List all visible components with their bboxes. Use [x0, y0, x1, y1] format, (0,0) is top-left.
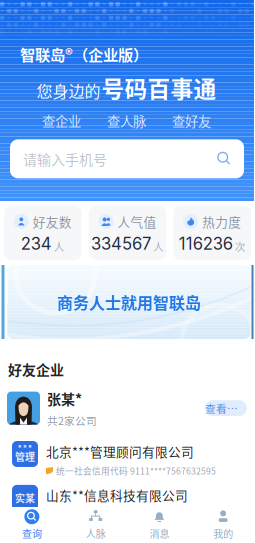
button[interactable]: 查询: [0, 507, 64, 543]
staticText: 统一社会信用代码 9111****7567632595: [56, 464, 216, 477]
staticText: 116236: [179, 234, 233, 254]
staticText: 智联岛®（企业版）: [20, 43, 148, 65]
button[interactable]: 好友数: [4, 206, 82, 260]
staticText: 次: [235, 238, 246, 254]
button[interactable]: 热力度: [173, 206, 251, 260]
staticText: 好友企业: [8, 359, 64, 379]
button[interactable]: 请输入手机号: [10, 139, 244, 178]
button[interactable]: 查人脉: [107, 111, 146, 130]
staticText: 山东**信息科技有限公司: [46, 486, 188, 504]
staticText: 好友数: [33, 212, 72, 230]
staticText: 查好友: [172, 111, 211, 130]
button[interactable]: 消息: [127, 507, 191, 543]
staticText: 234: [21, 234, 52, 254]
staticText: 您身边的: [36, 79, 100, 102]
staticText: 人脉: [86, 526, 106, 541]
staticText: 热力度: [202, 212, 241, 230]
staticText: 共2家公司: [47, 412, 97, 428]
button[interactable]: 实某: [0, 485, 255, 511]
staticText: 商务人士就用智联岛: [57, 290, 201, 314]
staticText: 查企业: [42, 111, 81, 130]
staticText: 我的: [213, 526, 233, 541]
staticText: 人气值: [117, 212, 156, 230]
staticText: 人: [54, 238, 65, 254]
button[interactable]: 我的: [191, 507, 255, 543]
staticText: 实某: [15, 491, 35, 505]
button[interactable]: 管理: [0, 441, 255, 477]
staticText: 查看全部: [205, 400, 247, 416]
button[interactable]: 商务人士就用智联岛: [7, 265, 250, 339]
staticText: 请输入手机号: [23, 149, 107, 169]
staticText: 消息: [149, 526, 169, 541]
button[interactable]: 人气值: [89, 206, 166, 260]
button[interactable]: 查企业: [42, 111, 81, 130]
staticText: 号码百事通: [101, 71, 216, 104]
staticText: 人: [153, 238, 164, 254]
staticText: 查人脉: [107, 111, 146, 130]
staticText: 北京***管理顾问有限公司: [46, 442, 194, 460]
staticText: 张某*: [47, 388, 82, 409]
staticText: 管理: [15, 449, 35, 464]
staticText: 334567: [91, 234, 151, 254]
staticText: 查询: [22, 526, 42, 541]
button[interactable]: 查好友: [172, 111, 211, 130]
button[interactable]: 张某*: [0, 388, 255, 428]
button[interactable]: 人脉: [64, 507, 128, 543]
